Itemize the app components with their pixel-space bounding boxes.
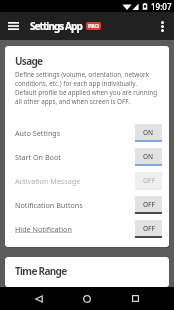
staticText: OFF [143,200,155,209]
staticText: ON [143,152,154,161]
staticText: Start On Boot [15,152,61,162]
staticText: 19:07 [151,1,172,12]
button[interactable]: Recent apps [120,287,151,310]
button[interactable]: Hide Notification [15,217,169,241]
staticText: PRO [88,22,99,30]
button[interactable]: Notification Buttons [15,193,169,217]
staticText: Usage [15,54,43,68]
staticText: Notification Buttons [15,200,83,210]
staticText: Settings App [30,19,82,33]
button[interactable]: Home [71,287,102,310]
staticText: Hide Notification [15,224,72,234]
button[interactable]: Start On Boot [15,145,169,169]
staticText: ON [143,128,154,137]
button[interactable]: Auto Settings [15,121,169,145]
button[interactable]: Open navigation menu [0,12,26,40]
staticText: Define settings (volume, orientation, ne… [15,70,158,106]
staticText: Time Range [15,264,67,278]
button[interactable]: More options [151,12,173,40]
staticText: Activation Message [15,176,81,186]
button[interactable]: Activation Message [15,169,169,193]
staticText: OFF [143,176,155,185]
staticText: OFF [143,224,155,233]
staticText: Auto Settings [15,128,61,138]
button[interactable]: Back [23,287,54,310]
